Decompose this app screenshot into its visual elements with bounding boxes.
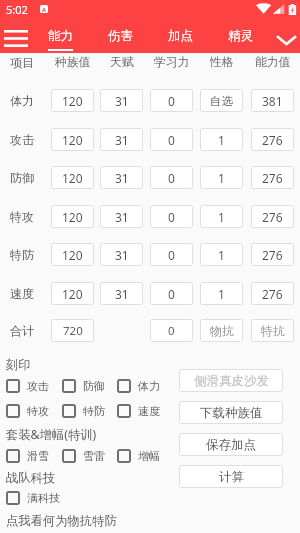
button[interactable]: 120 — [51, 243, 94, 266]
button[interactable]: 1 — [200, 282, 243, 305]
staticText: 720 — [63, 323, 83, 339]
button[interactable]: 31 — [100, 205, 143, 228]
button[interactable]: 特抗 — [251, 319, 294, 342]
staticText: 滑雪 — [27, 449, 49, 463]
staticText: 1 — [218, 170, 225, 186]
button[interactable]: 1 — [200, 166, 243, 189]
button[interactable]: 0 — [150, 166, 193, 189]
button[interactable]: 0 — [150, 282, 193, 305]
button[interactable]: 276 — [251, 166, 294, 189]
staticText: 31 — [115, 170, 129, 186]
button[interactable]: 276 — [251, 243, 294, 266]
staticText: 0 — [168, 93, 175, 109]
staticText: 276 — [262, 209, 283, 225]
staticText: 雪雷 — [83, 449, 105, 463]
staticText: 精灵 — [228, 28, 253, 44]
staticText: 战队科技 — [6, 470, 56, 485]
button[interactable]: 计算 — [179, 465, 283, 488]
staticText: 种族值 — [55, 55, 91, 69]
staticText: 能力值 — [255, 55, 291, 69]
staticText: 120 — [62, 247, 83, 263]
staticText: 点我看何为物抗特防 — [6, 513, 117, 528]
button[interactable]: 速度 — [117, 404, 160, 418]
staticText: 276 — [262, 132, 283, 148]
button[interactable]: 276 — [251, 205, 294, 228]
staticText: 速度 — [138, 404, 160, 418]
button[interactable]: 下载种族值 — [179, 401, 283, 424]
button[interactable]: 720 — [51, 319, 94, 342]
staticText: 120 — [62, 132, 83, 148]
button[interactable]: 31 — [100, 166, 143, 189]
button[interactable]: 1 — [200, 243, 243, 266]
button[interactable]: 侧滑真皮沙发 — [179, 369, 283, 392]
staticText: 特攻 — [10, 209, 34, 224]
button[interactable]: 增幅 — [117, 449, 160, 463]
staticText: 120 — [62, 170, 83, 186]
staticText: 体力 — [138, 379, 160, 393]
staticText: 特攻 — [27, 404, 49, 418]
staticText: 31 — [115, 132, 129, 148]
button[interactable]: 0 — [150, 128, 193, 151]
button[interactable]: Menu — [0, 27, 31, 50]
staticText: 增幅 — [138, 449, 160, 463]
staticText: 31 — [115, 93, 129, 109]
button[interactable]: 276 — [251, 128, 294, 151]
button[interactable]: 滑雪 — [6, 449, 49, 463]
staticText: 满科技 — [27, 491, 60, 505]
button[interactable]: 防御 — [62, 379, 105, 393]
button[interactable]: 精灵 — [210, 18, 270, 53]
button[interactable]: 381 — [251, 89, 294, 112]
button[interactable]: 31 — [100, 282, 143, 305]
staticText: 套装&增幅(特训) — [6, 426, 97, 443]
button[interactable]: 31 — [100, 89, 143, 112]
button[interactable]: 120 — [51, 89, 94, 112]
button[interactable]: 加点 — [150, 18, 210, 53]
button[interactable]: 点我看何为物抗特防 — [6, 511, 117, 529]
staticText: 0 — [168, 209, 175, 225]
button[interactable]: 能力 — [31, 18, 90, 53]
staticText: 项目 — [10, 55, 34, 69]
button[interactable]: 120 — [51, 205, 94, 228]
button[interactable]: 1 — [200, 128, 243, 151]
staticText: 计算 — [219, 469, 244, 485]
button[interactable]: 120 — [51, 128, 94, 151]
staticText: 1 — [218, 247, 225, 263]
staticText: 276 — [262, 286, 283, 302]
button[interactable]: 0 — [150, 243, 193, 266]
staticText: 1 — [218, 132, 225, 148]
button[interactable]: 31 — [100, 243, 143, 266]
button[interactable]: 伤害 — [90, 18, 150, 53]
button[interactable]: More tabs — [269, 25, 300, 48]
staticText: 120 — [62, 93, 83, 109]
button[interactable]: 保存加点 — [179, 433, 283, 456]
button[interactable]: 276 — [251, 282, 294, 305]
button[interactable]: 攻击 — [6, 379, 49, 393]
staticText: 刻印 — [6, 357, 31, 372]
button[interactable]: 自选 — [200, 89, 243, 112]
button[interactable]: 0 — [150, 205, 193, 228]
button[interactable]: 1 — [200, 205, 243, 228]
button[interactable]: 31 — [100, 128, 143, 151]
staticText: 能力 — [48, 28, 73, 44]
staticText: 性格 — [210, 55, 234, 69]
button[interactable]: 特防 — [62, 404, 105, 418]
button[interactable]: 0 — [150, 319, 193, 342]
button[interactable]: 雪雷 — [62, 449, 105, 463]
staticText: 防御 — [83, 379, 105, 393]
button[interactable]: 物抗 — [200, 319, 243, 342]
button[interactable]: 特攻 — [6, 404, 49, 418]
staticText: 381 — [262, 93, 283, 109]
staticText: 0 — [168, 286, 175, 302]
staticText: 体力 — [10, 93, 34, 108]
staticText: 276 — [262, 247, 283, 263]
staticText: 31 — [115, 247, 129, 263]
button[interactable]: 120 — [51, 166, 94, 189]
staticText: 攻击 — [10, 132, 34, 147]
button[interactable]: 满科技 — [6, 491, 60, 505]
button[interactable]: 0 — [150, 89, 193, 112]
button[interactable]: 120 — [51, 282, 94, 305]
staticText: 自选 — [210, 94, 233, 108]
staticText: 特防 — [83, 404, 105, 418]
button[interactable]: 体力 — [117, 379, 160, 393]
staticText: 5:02 — [6, 2, 28, 17]
